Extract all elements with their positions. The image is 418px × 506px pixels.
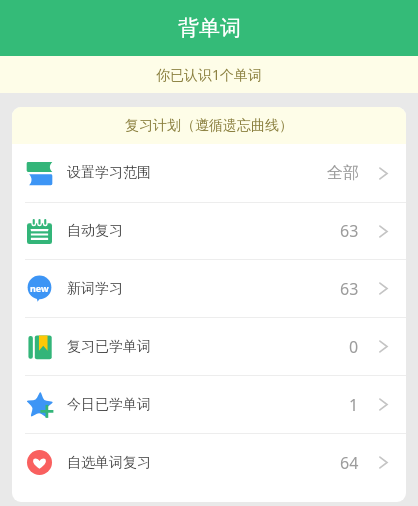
button[interactable]: 设置学习范围 xyxy=(12,144,406,202)
staticText: 新词学习 xyxy=(67,280,123,298)
button[interactable]: 自选单词复习 xyxy=(12,434,406,491)
staticText: 63 xyxy=(340,220,359,242)
staticText: 64 xyxy=(340,452,359,474)
staticText: 设置学习范围 xyxy=(67,164,151,182)
staticText: 今日已学单词 xyxy=(67,396,151,414)
button[interactable]: 复习已学单词 xyxy=(12,318,406,375)
staticText: 0 xyxy=(349,336,359,358)
button[interactable]: 自动复习 xyxy=(12,203,406,259)
staticText: 复习计划（遵循遗忘曲线） xyxy=(125,117,293,135)
staticText: 背单词 xyxy=(178,15,241,41)
staticText: 63 xyxy=(340,278,359,300)
staticText: 复习已学单词 xyxy=(67,338,151,356)
staticText: 1 xyxy=(349,394,359,416)
staticText: 你已认识1个单词 xyxy=(156,65,263,84)
staticText: 全部 xyxy=(327,163,359,183)
button[interactable]: 今日已学单词 xyxy=(12,376,406,433)
button[interactable]: new xyxy=(12,260,406,317)
staticText: new xyxy=(30,282,49,294)
staticText: 自选单词复习 xyxy=(67,454,151,472)
staticText: 自动复习 xyxy=(67,222,123,240)
